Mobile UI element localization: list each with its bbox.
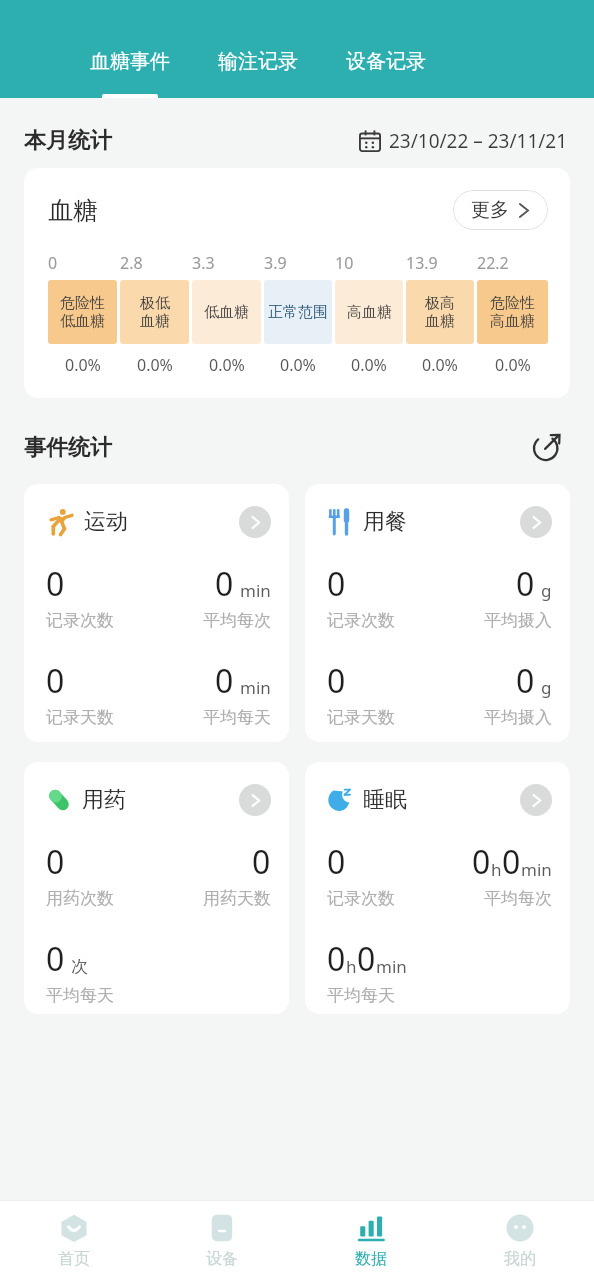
staticText: 0 [215,562,234,606]
staticText: g [541,676,552,699]
button[interactable]: 运动 [24,484,289,742]
button[interactable]: 正常范围 [264,280,332,344]
button[interactable]: 低血糖 [192,280,261,344]
button[interactable]: 高血糖 [335,280,403,344]
staticText: 我的 [504,1249,536,1269]
staticText: 0.0% [422,354,458,376]
staticText: 22.2 [477,252,509,274]
staticText: 更多 [471,198,509,222]
button[interactable]: 危险性 高血糖 [477,280,548,344]
staticText: 23/10/22 – 23/11/21 [389,128,568,154]
staticText: 低血糖 [204,303,249,322]
staticText: 数据 [355,1249,387,1269]
staticText: 首页 [58,1249,90,1269]
staticText: 2.8 [120,252,143,274]
staticText: 次 [71,956,88,977]
staticText: 平均摄入 [484,610,552,631]
staticText: 设备记录 [346,49,426,74]
button[interactable]: Share [524,426,568,470]
staticText: 0 [46,937,65,981]
staticText: 高血糖 [347,303,392,322]
staticText: 0.0% [495,354,531,376]
staticText: 记录次数 [46,610,114,631]
staticText: 睡眠 [363,786,407,814]
staticText: 用药 [82,786,126,814]
staticText: 事件统计 [24,434,112,462]
staticText: 危险性 高血糖 [490,294,535,331]
staticText: 极高 血糖 [425,294,455,331]
staticText: 输注记录 [218,49,298,74]
staticText: 0.0% [351,354,387,376]
staticText: 0 [46,840,65,884]
staticText: 用药次数 [46,888,114,909]
button[interactable]: 睡眠 详情 [520,784,552,816]
staticText: 0 [215,659,234,703]
staticText: 设备 [206,1249,238,1269]
button[interactable]: 23/10/22 – 23/11/21 [355,124,572,158]
staticText: 平均摄入 [484,707,552,728]
staticText: min [240,579,271,602]
staticText: 0 [327,937,346,981]
staticText: 0 [327,659,346,703]
staticText: min [240,676,271,699]
staticText: h [491,858,502,881]
staticText: 平均每次 [484,888,552,909]
staticText: 平均每天 [203,707,271,728]
staticText: 13.9 [406,252,438,274]
staticText: 运动 [84,508,128,536]
staticText: 平均每天 [46,985,114,1006]
staticText: 本月统计 [24,127,112,155]
staticText: 10 [335,252,354,274]
staticText: 血糖事件 [90,49,170,74]
staticText: 3.9 [264,252,287,274]
staticText: 0 [516,659,535,703]
staticText: 极低 血糖 [140,294,170,331]
staticText: 平均每次 [203,610,271,631]
staticText: 血糖 [48,195,98,226]
staticText: 正常范围 [268,303,328,322]
button[interactable]: 睡眠 [305,762,570,1014]
button[interactable]: 设备 [148,1201,296,1280]
button[interactable]: 血糖事件 [86,49,174,98]
staticText: 0 [48,252,58,274]
button[interactable]: 我的 [445,1201,594,1280]
button[interactable]: 极高 血糖 [406,280,474,344]
staticText: 记录天数 [46,707,114,728]
button[interactable]: 输注记录 [214,49,302,98]
staticText: 用餐 [363,508,407,536]
staticText: 0 [357,937,376,981]
staticText: 0 [327,840,346,884]
staticText: h [346,955,357,978]
staticText: 0 [472,840,491,884]
button[interactable]: 首页 [0,1201,148,1280]
staticText: 用药天数 [203,888,271,909]
staticText: g [541,579,552,602]
button[interactable]: 极低 血糖 [120,280,189,344]
staticText: 记录次数 [327,888,395,909]
button[interactable]: 设备记录 [342,49,430,98]
staticText: 0.0% [209,354,245,376]
staticText: 0 [252,840,271,884]
button[interactable]: 运动 详情 [239,506,271,538]
staticText: 3.3 [192,252,215,274]
button[interactable]: 用餐 [305,484,570,742]
staticText: 危险性 低血糖 [60,294,105,331]
button[interactable]: 用餐 详情 [520,506,552,538]
staticText: 0.0% [65,354,101,376]
staticText: 0 [327,562,346,606]
staticText: 0 [46,562,65,606]
button[interactable]: 用药 [24,762,289,1014]
staticText: 平均每天 [327,985,395,1006]
button[interactable]: 数据 [296,1201,445,1280]
button[interactable]: 更多 [453,190,548,230]
staticText: 记录次数 [327,610,395,631]
staticText: 0 [46,659,65,703]
button[interactable]: 用药 详情 [239,784,271,816]
staticText: min [376,955,407,978]
staticText: 记录天数 [327,707,395,728]
button[interactable]: 危险性 低血糖 [48,280,117,344]
staticText: 0 [516,562,535,606]
staticText: 0 [502,840,521,884]
staticText: min [521,858,552,881]
staticText: 0.0% [280,354,316,376]
